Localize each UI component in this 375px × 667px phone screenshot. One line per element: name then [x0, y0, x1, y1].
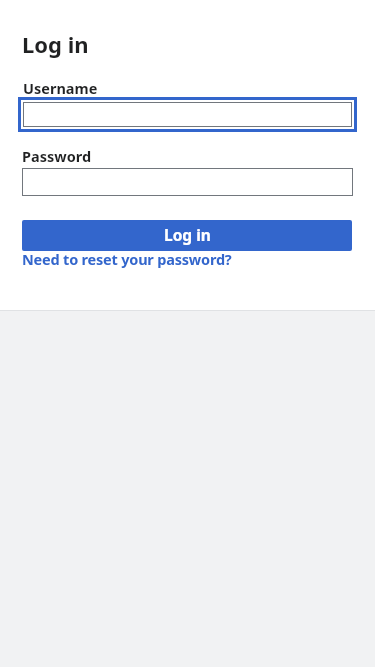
staticText: Log in — [164, 224, 211, 245]
staticText: Password — [22, 146, 92, 166]
button[interactable]: Log in — [22, 220, 352, 251]
button[interactable] — [18, 97, 357, 132]
staticText: Username — [23, 78, 98, 98]
staticText: Log in — [22, 29, 89, 59]
button[interactable]: Need to reset your password? — [22, 249, 232, 269]
button[interactable] — [22, 168, 353, 196]
